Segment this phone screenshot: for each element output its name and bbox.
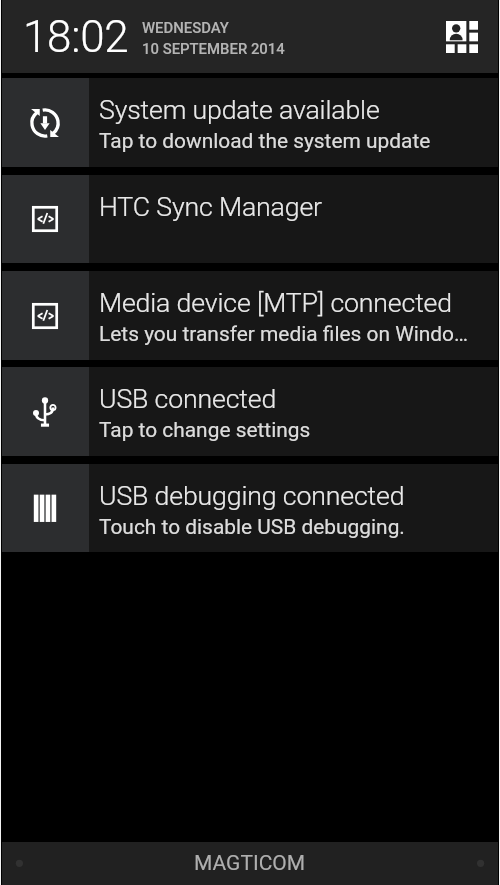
button[interactable]: HTC Sync Manager <box>0 175 500 263</box>
staticText: HTC Sync Manager <box>99 191 322 222</box>
staticText: Tap to download the system update <box>99 129 431 153</box>
staticText: WEDNESDAY <box>142 19 229 36</box>
staticText: 18:02 <box>23 11 129 63</box>
button[interactable]: Quick settings <box>434 9 490 65</box>
button[interactable]: MAGTICOM <box>0 842 500 885</box>
staticText: MAGTICOM <box>194 851 306 876</box>
button[interactable]: System update available <box>0 78 500 167</box>
button[interactable]: USB debugging connected <box>0 464 500 552</box>
staticText: Lets you transfer media files on Windo… <box>99 322 468 346</box>
staticText: System update available <box>99 94 380 125</box>
staticText: 10 SEPTEMBER 2014 <box>142 40 285 57</box>
button[interactable]: USB connected <box>0 367 500 456</box>
staticText: Touch to disable USB debugging. <box>99 515 405 539</box>
staticText: USB debugging connected <box>99 480 405 511</box>
staticText: Media device [MTP] connected <box>99 287 452 318</box>
button[interactable]: Media device [MTP] connected <box>0 271 500 360</box>
staticText: USB connected <box>99 383 277 414</box>
staticText: Tap to change settings <box>99 418 311 442</box>
